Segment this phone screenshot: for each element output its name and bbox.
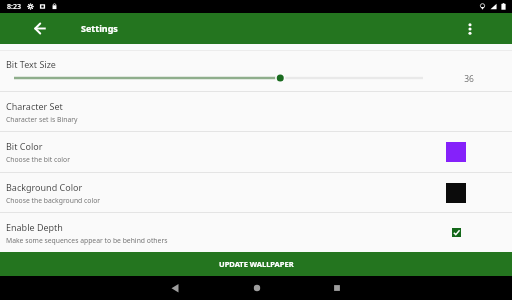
- button[interactable]: Enable Depth checkbox: [452, 228, 461, 237]
- button[interactable]: Home: [246, 277, 268, 299]
- staticText: 8:23: [7, 2, 21, 12]
- staticText: Character Set: [6, 100, 63, 112]
- button[interactable]: Back: [164, 277, 186, 299]
- staticText: Character set is Binary: [6, 115, 78, 124]
- button[interactable]: Bit Text Size: [0, 51, 512, 91]
- staticText: 36: [440, 73, 498, 85]
- staticText: Settings: [81, 22, 118, 34]
- button[interactable]: More options: [461, 20, 479, 38]
- staticText: Background Color: [6, 181, 83, 193]
- staticText: Choose the bit color: [6, 155, 71, 164]
- staticText: Enable Depth: [6, 221, 63, 233]
- button[interactable]: Enable Depth: [0, 213, 512, 252]
- button[interactable]: Back: [24, 13, 56, 44]
- staticText: Choose the background color: [6, 196, 101, 205]
- button[interactable]: Bit Color: [0, 132, 512, 172]
- staticText: Bit Text Size: [6, 58, 56, 70]
- button[interactable]: Background Color: [0, 173, 512, 212]
- staticText: Make some sequences appear to be behind …: [6, 236, 168, 245]
- button[interactable]: Character Set: [0, 92, 512, 131]
- staticText: Bit Color: [6, 140, 43, 152]
- staticText: UPDATE WALLPAPER: [219, 259, 294, 269]
- button[interactable]: Recents: [326, 277, 348, 299]
- button[interactable]: UPDATE WALLPAPER: [0, 252, 512, 276]
